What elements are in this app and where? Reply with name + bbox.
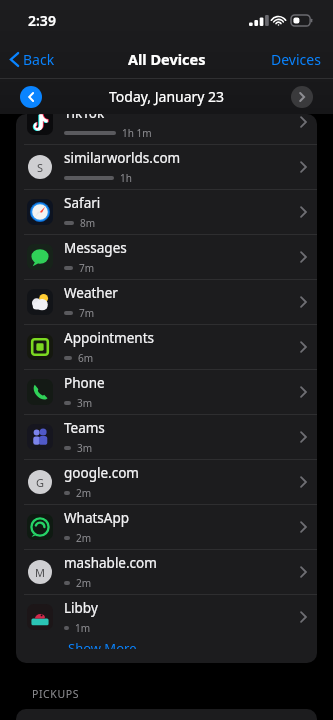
staticText: Devices xyxy=(271,50,321,69)
staticText: S xyxy=(37,160,44,175)
staticText: M xyxy=(35,565,45,580)
button[interactable]: Back xyxy=(0,44,65,75)
staticText: Weather xyxy=(64,284,118,302)
staticText: G xyxy=(36,475,45,490)
button[interactable]: Libby xyxy=(16,595,317,639)
button[interactable]: Appointments xyxy=(16,325,317,369)
staticText: 1m xyxy=(75,621,91,635)
staticText: 8m xyxy=(80,216,96,230)
button[interactable]: Safari xyxy=(16,190,317,234)
staticText: WhatsApp xyxy=(64,509,130,527)
button[interactable]: Next day xyxy=(291,86,313,108)
button[interactable]: M xyxy=(16,550,317,594)
staticText: Phone xyxy=(64,374,105,392)
staticText: 3m xyxy=(77,441,93,455)
staticText: All Devices xyxy=(128,49,206,69)
staticText: Libby xyxy=(64,599,98,617)
button[interactable]: Devices xyxy=(259,44,333,75)
staticText: 6m xyxy=(78,351,94,365)
staticText: 2m xyxy=(76,486,92,500)
staticText: 7m xyxy=(79,261,95,275)
staticText: Teams xyxy=(64,419,105,437)
staticText: Safari xyxy=(64,194,101,212)
staticText: 3m xyxy=(77,396,93,410)
staticText: Appointments xyxy=(64,329,155,347)
staticText: 1h 1m xyxy=(122,126,152,140)
staticText: similarworlds.com xyxy=(64,149,181,167)
staticText: 7m xyxy=(79,306,95,320)
button[interactable]: TikTok xyxy=(16,114,317,144)
staticText: Messages xyxy=(64,239,127,257)
button[interactable]: WhatsApp xyxy=(16,505,317,549)
button[interactable]: Previous day xyxy=(20,86,42,108)
staticText: Today, January 23 xyxy=(109,87,225,106)
staticText: 2m xyxy=(76,531,92,545)
button[interactable]: G xyxy=(16,460,317,504)
staticText: TikTok xyxy=(64,114,105,122)
staticText: 2m xyxy=(76,576,92,590)
staticText: Back xyxy=(23,50,55,69)
staticText: mashable.com xyxy=(64,554,157,572)
button[interactable]: S xyxy=(16,145,317,189)
staticText: 2:39 xyxy=(28,11,56,30)
button[interactable]: Teams xyxy=(16,415,317,459)
button[interactable]: Phone xyxy=(16,370,317,414)
staticText: PICKUPS xyxy=(32,687,80,701)
staticText: Show More xyxy=(68,639,137,649)
button[interactable]: Messages xyxy=(16,235,317,279)
button[interactable]: Weather xyxy=(16,280,317,324)
staticText: google.com xyxy=(64,464,139,482)
staticText: 1h xyxy=(120,171,132,185)
button[interactable]: Show More xyxy=(16,639,317,649)
